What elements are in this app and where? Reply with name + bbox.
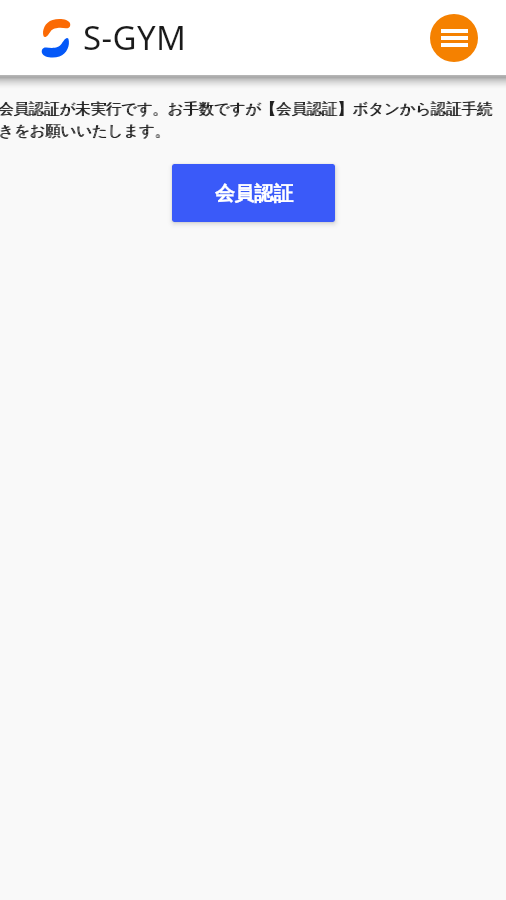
button[interactable]: Menu	[430, 14, 478, 62]
staticText: 会員認証	[215, 181, 293, 206]
staticText: 会員認証が未実行です。お手数ですが【会員認証】ボタンから認証手続きをお願いいたし…	[0, 99, 504, 140]
button[interactable]: 会員認証	[172, 164, 335, 222]
staticText: 会員認証が未実行です。お手数ですが【会員認証】ボタンから認証手続きをお願いいたし…	[0, 99, 505, 140]
staticText: S-GYM	[83, 15, 187, 60]
